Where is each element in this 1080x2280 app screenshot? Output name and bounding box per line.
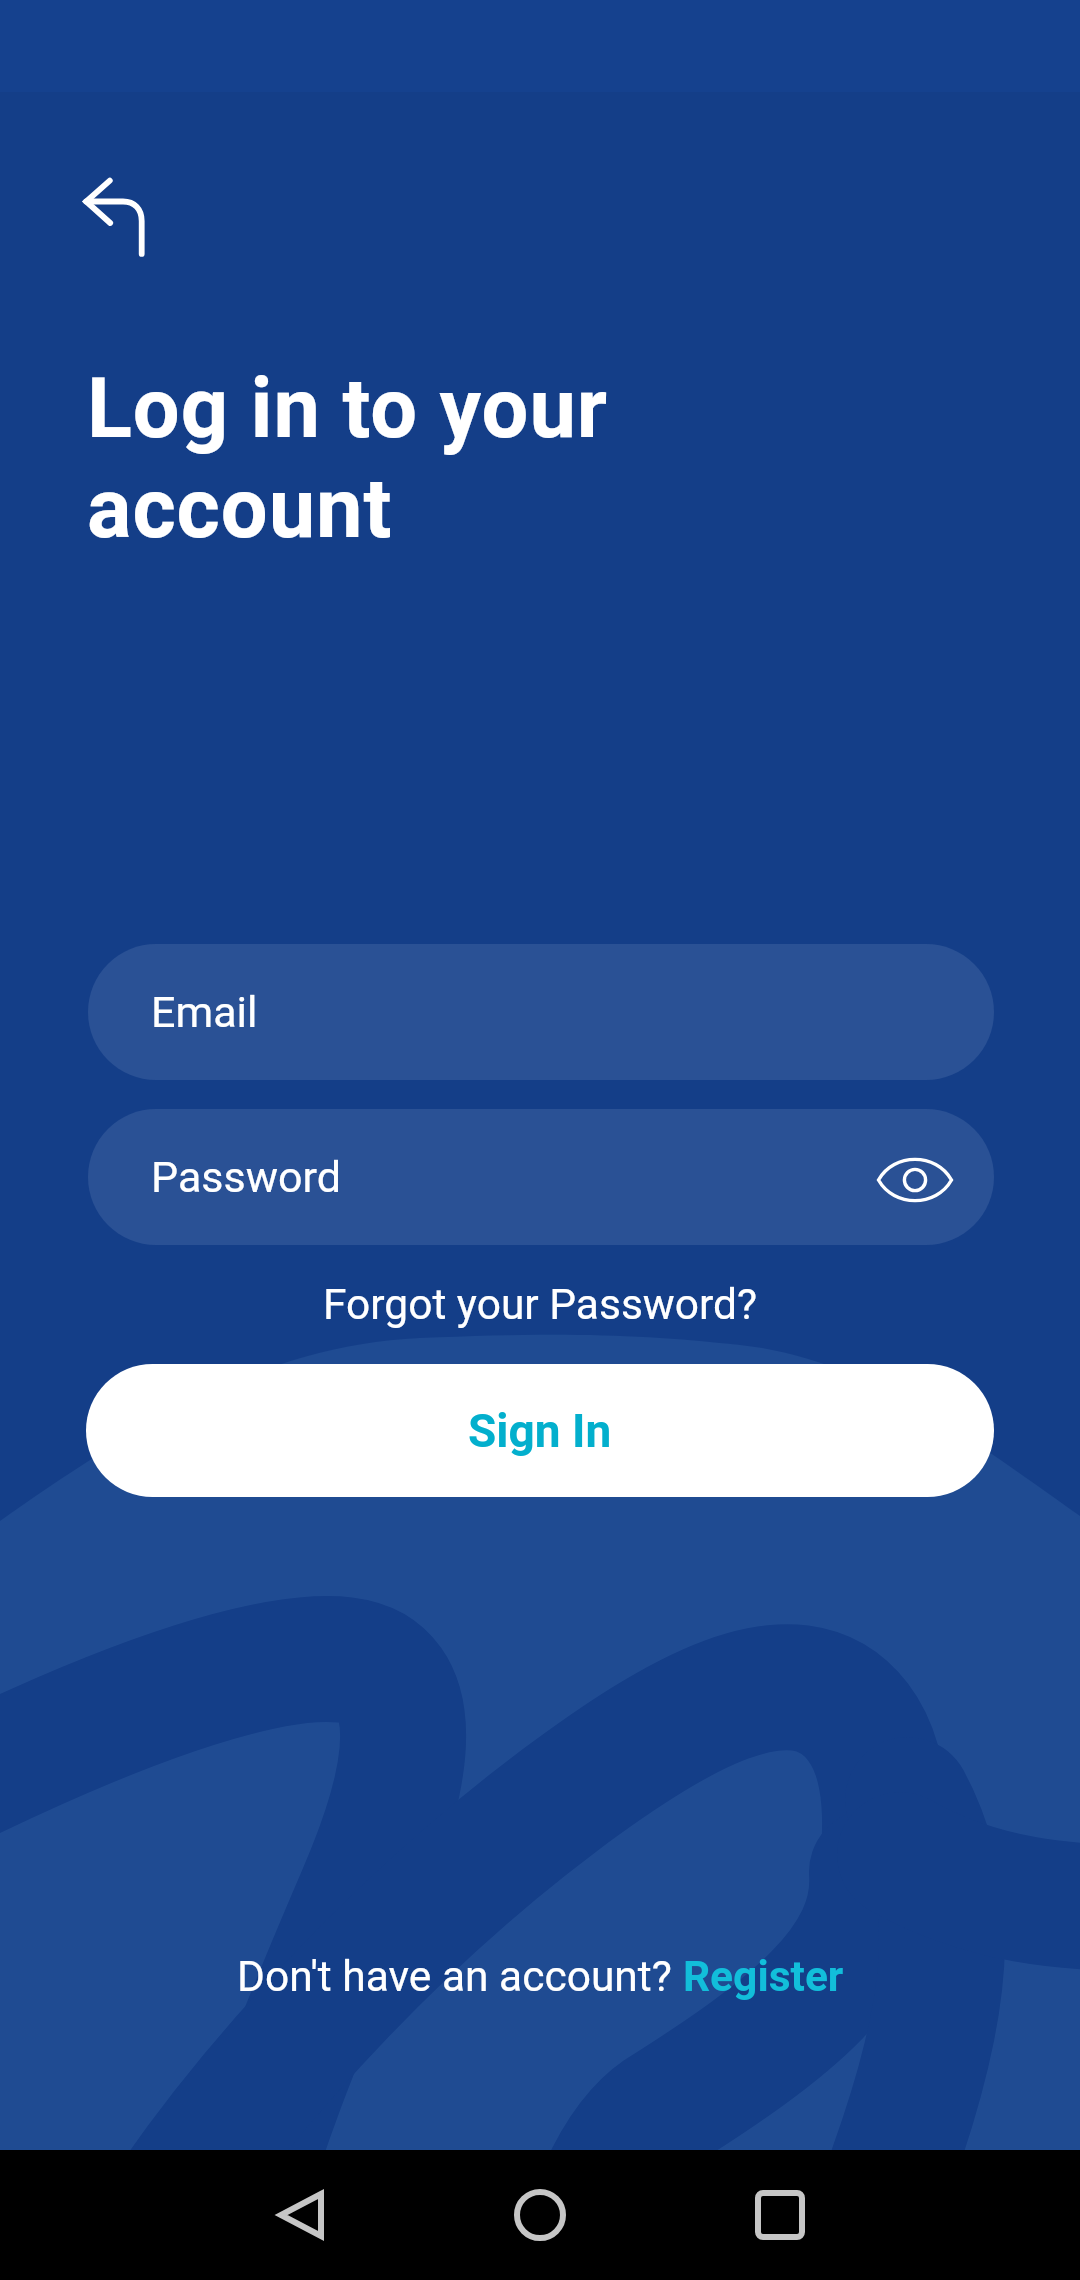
staticText: Log in to your account: [87, 360, 608, 557]
staticText: Register: [683, 1952, 844, 2002]
staticText: Email: [151, 987, 258, 1037]
button[interactable]: Sign In: [86, 1364, 994, 1497]
button[interactable]: Show password: [867, 1132, 963, 1228]
button[interactable]: Email: [88, 944, 994, 1080]
button[interactable]: Home: [480, 2150, 600, 2280]
button[interactable]: Recent apps: [720, 2150, 840, 2280]
staticText: Password: [151, 1152, 341, 1202]
staticText: Don't have an account?: [237, 1952, 683, 2002]
button[interactable]: Forgot your Password?: [0, 1268, 1080, 1342]
button[interactable]: Password: [88, 1109, 994, 1245]
staticText: Forgot your Password?: [323, 1280, 758, 1330]
button[interactable]: Don't have an account?: [0, 1939, 1080, 2015]
staticText: Sign In: [468, 1404, 612, 1458]
button[interactable]: Back: [60, 158, 168, 266]
button[interactable]: Back: [240, 2150, 360, 2280]
